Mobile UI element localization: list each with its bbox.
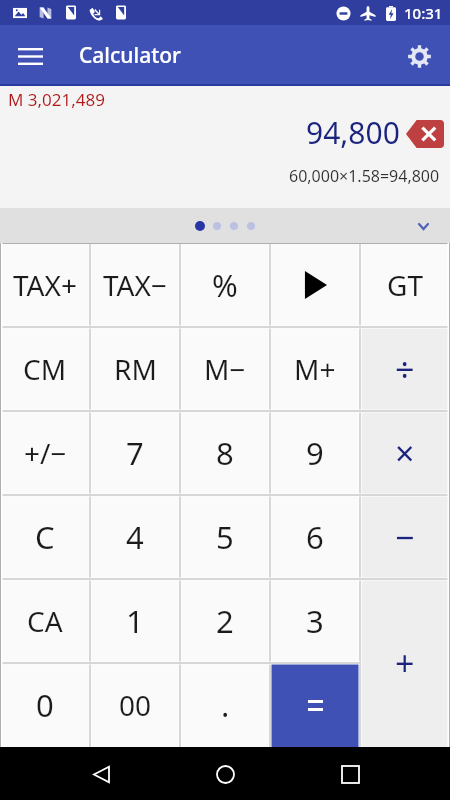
button[interactable]: 2 <box>180 579 270 663</box>
button[interactable]: 5 <box>180 495 270 579</box>
button[interactable]: 8 <box>180 411 270 495</box>
button[interactable]: 1 <box>90 579 180 663</box>
button[interactable]: . <box>180 663 270 747</box>
button[interactable]: M+ <box>270 327 360 411</box>
button[interactable]: Back <box>77 750 125 798</box>
staticText: 7 <box>126 432 144 474</box>
button[interactable] <box>270 243 360 327</box>
staticText: TAX+ <box>13 266 77 304</box>
button[interactable]: C <box>0 495 90 579</box>
staticText: 2 <box>216 600 234 642</box>
button[interactable]: Backspace <box>406 120 444 148</box>
staticText: TAX− <box>103 266 167 304</box>
button[interactable]: CM <box>0 327 90 411</box>
staticText: 1 <box>126 600 144 642</box>
staticText: 4 <box>126 516 144 558</box>
button[interactable]: 4 <box>90 495 180 579</box>
button[interactable]: 6 <box>270 495 360 579</box>
button[interactable]: RM <box>90 327 180 411</box>
button[interactable]: Expand <box>408 211 438 241</box>
staticText: CM <box>23 350 67 388</box>
staticText: % <box>212 264 238 306</box>
staticText: × <box>395 430 415 476</box>
staticText: Calculator <box>79 41 181 70</box>
button[interactable]: 0 <box>0 663 90 747</box>
button[interactable]: ÷ <box>360 327 450 411</box>
staticText: 10:31 <box>404 3 443 23</box>
staticText: 6 <box>306 516 324 558</box>
staticText: 60,000×1.58=94,800 <box>289 165 440 187</box>
button[interactable]: + <box>360 579 450 747</box>
button[interactable]: 00 <box>90 663 180 747</box>
button[interactable]: TAX+ <box>0 243 90 327</box>
staticText: . <box>221 684 230 726</box>
staticText: M− <box>204 350 246 388</box>
button[interactable]: × <box>360 411 450 495</box>
button[interactable]: 7 <box>90 411 180 495</box>
button[interactable]: TAX− <box>90 243 180 327</box>
staticText: RM <box>114 350 157 388</box>
staticText: ÷ <box>395 346 415 392</box>
staticText: GT <box>387 266 423 304</box>
staticText: +/− <box>24 434 67 472</box>
button[interactable]: Menu <box>6 32 54 80</box>
staticText: 5 <box>216 516 234 558</box>
staticText: M+ <box>294 350 336 388</box>
staticText: 94,800 <box>306 112 400 153</box>
staticText: 8 <box>216 432 234 474</box>
staticText: 00 <box>119 686 152 724</box>
button[interactable]: − <box>360 495 450 579</box>
staticText: CA <box>27 602 63 640</box>
button[interactable]: GT <box>360 243 450 327</box>
button[interactable]: 3 <box>270 579 360 663</box>
button[interactable]: % <box>180 243 270 327</box>
button[interactable]: CA <box>0 579 90 663</box>
button[interactable]: 9 <box>270 411 360 495</box>
button[interactable]: +/− <box>0 411 90 495</box>
button[interactable] <box>270 663 360 747</box>
staticText: M 3,021,489 <box>8 88 106 111</box>
staticText: 9 <box>306 432 324 474</box>
button[interactable]: Recents <box>326 750 374 798</box>
staticText: − <box>395 514 415 560</box>
button[interactable]: Home <box>201 750 249 798</box>
staticText: 0 <box>36 684 54 726</box>
staticText: 3 <box>306 600 324 642</box>
staticText: + <box>395 640 415 686</box>
button[interactable]: M− <box>180 327 270 411</box>
staticText: C <box>35 516 55 558</box>
button[interactable]: Settings <box>395 32 443 80</box>
